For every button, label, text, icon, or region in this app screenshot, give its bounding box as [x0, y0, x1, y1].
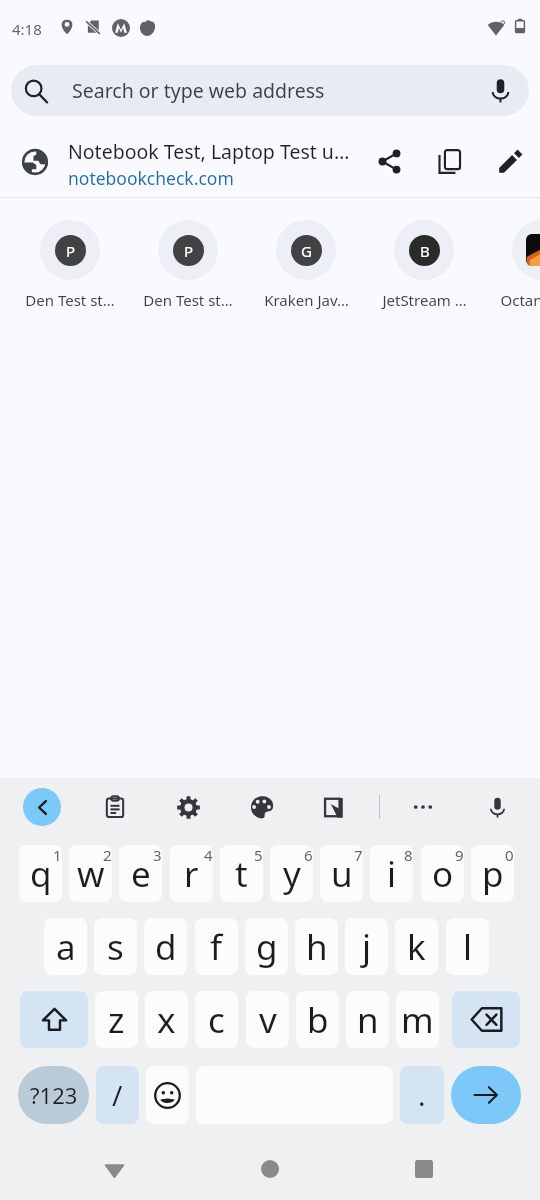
staticText: u [331, 850, 353, 898]
button[interactable]: x [145, 991, 188, 1048]
staticText: B [420, 241, 430, 261]
button[interactable]: h [295, 918, 338, 975]
staticText: 5 [254, 845, 263, 865]
button[interactable]: z [95, 991, 138, 1048]
button[interactable]: / [96, 1066, 139, 1124]
staticText: l [463, 923, 473, 971]
button[interactable]: ?123 [18, 1066, 89, 1124]
button[interactable]: v [246, 991, 289, 1048]
button[interactable]: Theme [241, 786, 283, 828]
staticText: i [387, 850, 397, 898]
button[interactable]: Back [94, 1140, 134, 1198]
staticText: e [131, 850, 151, 898]
staticText: notebookcheck.com [68, 166, 234, 190]
staticText: Den Test st… [143, 290, 233, 310]
staticText: f [210, 923, 223, 971]
staticText: d [155, 923, 177, 971]
button[interactable]: Octane Re… [483, 198, 540, 328]
button[interactable]: Enter [451, 1066, 521, 1124]
button[interactable]: Search or type web address [11, 65, 529, 116]
button[interactable]: q [19, 845, 62, 902]
button[interactable]: b [296, 991, 339, 1048]
button[interactable]: Edit [486, 137, 534, 185]
staticText: Kraken Jav… [264, 290, 349, 310]
staticText: k [407, 923, 426, 971]
staticText: z [108, 996, 125, 1044]
staticText: w [77, 850, 105, 898]
staticText: n [357, 996, 379, 1044]
staticText: p [482, 850, 504, 898]
button[interactable]: Clipboard [94, 786, 136, 828]
button[interactable]: y [270, 845, 313, 902]
staticText: r [184, 850, 199, 898]
button[interactable]: More [402, 786, 444, 828]
button[interactable]: a [44, 918, 87, 975]
staticText: JetStream … [382, 290, 467, 310]
button[interactable]: p [471, 845, 514, 902]
staticText: 8 [404, 845, 413, 865]
staticText: x [157, 996, 176, 1044]
button[interactable]: Stickers [313, 786, 355, 828]
button[interactable]: P [11, 198, 129, 328]
staticText: j [362, 923, 372, 971]
button[interactable]: Recents [404, 1140, 444, 1198]
button[interactable]: g [245, 918, 288, 975]
staticText: v [259, 996, 277, 1044]
staticText: 4:18 [12, 19, 42, 39]
button[interactable]: Back [23, 788, 61, 826]
staticText: 1 [53, 845, 62, 865]
button[interactable]: Home [250, 1140, 290, 1198]
button[interactable]: G [247, 198, 365, 328]
staticText: ?123 [30, 1080, 78, 1110]
button[interactable]: r [170, 845, 213, 902]
button[interactable]: u [320, 845, 363, 902]
button[interactable]: . [400, 1066, 444, 1124]
button[interactable]: k [395, 918, 438, 975]
button[interactable]: f [195, 918, 238, 975]
button[interactable]: Settings [167, 786, 209, 828]
button[interactable]: B [365, 198, 483, 328]
staticText: o [432, 850, 454, 898]
button[interactable]: c [195, 991, 238, 1048]
staticText: c [208, 996, 225, 1044]
staticText: 2 [103, 845, 112, 865]
staticText: 6 [304, 845, 313, 865]
staticText: s [107, 923, 124, 971]
staticText: 9 [455, 845, 464, 865]
staticText: y [283, 850, 301, 898]
button[interactable]: e [119, 845, 162, 902]
button[interactable]: Voice [476, 786, 518, 828]
button[interactable]: j [345, 918, 388, 975]
button[interactable]: m [396, 991, 439, 1048]
button[interactable]: o [421, 845, 464, 902]
button[interactable]: w [69, 845, 112, 902]
staticText: g [256, 923, 278, 971]
staticText: Search or type web address [72, 77, 325, 104]
button[interactable]: Shift [20, 991, 88, 1048]
staticText: h [306, 923, 328, 971]
staticText: 4 [204, 845, 213, 865]
staticText: / [112, 1076, 123, 1114]
button[interactable]: n [346, 991, 389, 1048]
staticText: Den Test st… [25, 290, 115, 310]
button[interactable]: i [370, 845, 413, 902]
button[interactable]: P [129, 198, 247, 328]
button[interactable]: Tabs [425, 137, 473, 185]
button[interactable]: t [220, 845, 263, 902]
staticText: b [307, 996, 329, 1044]
button[interactable]: Emoji [146, 1066, 189, 1124]
staticText: P [66, 241, 76, 261]
button[interactable]: l [446, 918, 489, 975]
button[interactable]: d [144, 918, 187, 975]
staticText: q [30, 850, 52, 898]
staticText: m [401, 996, 434, 1044]
button[interactable]: s [94, 918, 137, 975]
button[interactable]: Backspace [452, 991, 520, 1048]
staticText: a [56, 923, 76, 971]
staticText: 7 [354, 845, 363, 865]
staticText: 0 [505, 845, 514, 865]
staticText: Octane Re… [500, 290, 540, 310]
button[interactable]: Share [365, 137, 413, 185]
staticText: Notebook Test, Laptop Test u… [68, 138, 350, 165]
